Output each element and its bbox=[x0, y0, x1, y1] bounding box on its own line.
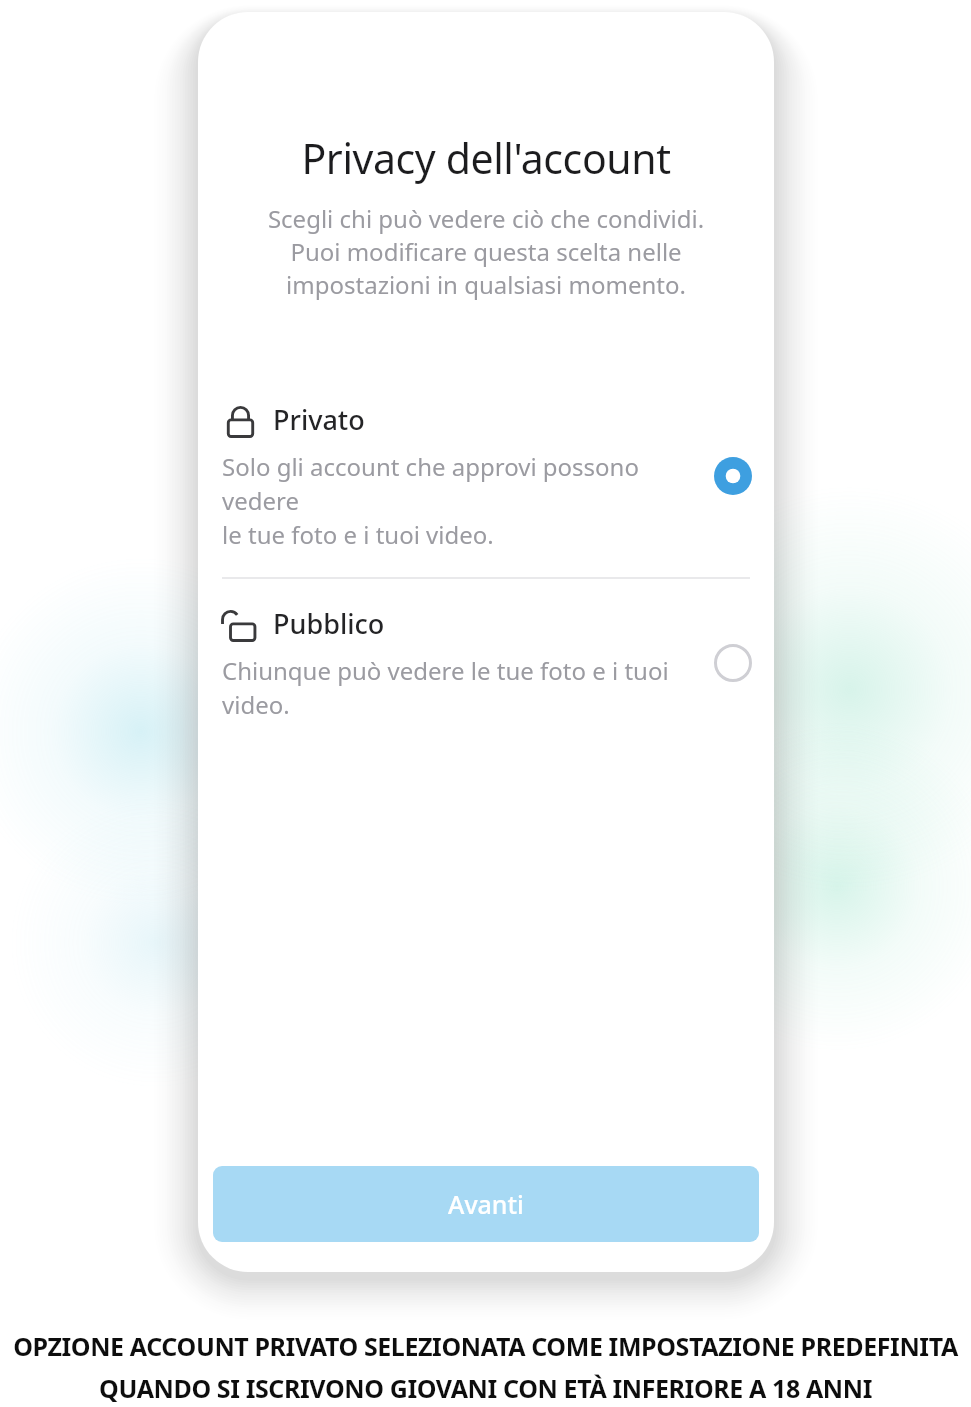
staticText: Avanti bbox=[448, 1187, 524, 1221]
button[interactable]: Pubblico bbox=[198, 605, 774, 721]
staticText: Privacy dell'account bbox=[198, 130, 774, 186]
staticText: Scegli chi può vedere ciò che condividi.… bbox=[222, 202, 750, 301]
staticText: Pubblico bbox=[273, 605, 385, 642]
button[interactable]: Privato bbox=[198, 401, 774, 551]
button[interactable]: Avanti bbox=[213, 1166, 759, 1242]
staticText: Solo gli account che approvi possono ved… bbox=[222, 450, 696, 551]
staticText: Privato bbox=[273, 401, 365, 438]
staticText: QUANDO SI ISCRIVONO GIOVANI CON ETÀ INFE… bbox=[99, 1371, 872, 1405]
button[interactable]: Seleziona Pubblico bbox=[706, 636, 760, 690]
staticText: Chiunque può vedere le tue foto e i tuoi… bbox=[222, 654, 696, 721]
staticText: OPZIONE ACCOUNT PRIVATO SELEZIONATA COME… bbox=[13, 1329, 958, 1363]
button[interactable]: Privato, selezionato bbox=[706, 449, 760, 503]
